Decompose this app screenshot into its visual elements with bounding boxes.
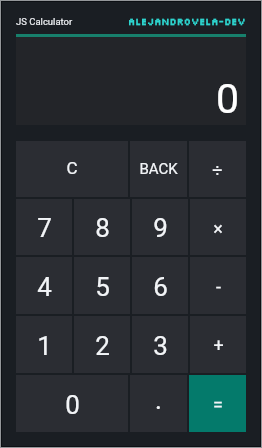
button[interactable]: 7	[16, 199, 72, 255]
staticText: C	[66, 158, 78, 178]
button[interactable]: 4	[16, 257, 72, 314]
staticText: =	[213, 394, 223, 415]
button[interactable]: Add	[190, 316, 246, 373]
staticText: -	[216, 276, 221, 297]
staticText: ÷	[212, 160, 223, 181]
button[interactable]: 1	[16, 316, 72, 373]
button[interactable]: 5	[74, 257, 130, 314]
button[interactable]: Multiply	[190, 199, 246, 255]
staticText: 0	[216, 75, 240, 123]
staticText: JS Calculator	[16, 16, 73, 27]
button[interactable]: 8	[74, 199, 130, 255]
button[interactable]: 2	[74, 316, 130, 373]
staticText: 4	[37, 272, 52, 302]
staticText: 6	[153, 272, 168, 302]
staticText: 3	[153, 331, 168, 361]
button[interactable]: BACK	[130, 141, 187, 197]
button[interactable]: Divide	[189, 141, 246, 197]
button[interactable]: 9	[132, 199, 188, 255]
button[interactable]: C	[16, 141, 128, 197]
button[interactable]: 0	[16, 375, 128, 432]
staticText: 1	[37, 331, 52, 361]
button[interactable]: Subtract	[190, 257, 246, 314]
button[interactable]: 3	[132, 316, 188, 373]
staticText: ×	[213, 218, 223, 239]
staticText: 0	[65, 390, 80, 420]
staticText: BACK	[139, 160, 178, 178]
staticText: 7	[37, 213, 52, 243]
staticText: +	[213, 335, 224, 356]
staticText: 9	[153, 213, 168, 243]
staticText: 8	[95, 213, 110, 243]
button[interactable]: Equals	[189, 375, 246, 432]
staticText: 5	[95, 272, 110, 302]
staticText: .	[155, 385, 162, 415]
staticText: 2	[95, 331, 110, 361]
staticText: ALEJANDROVELA-DEV	[128, 15, 246, 27]
button[interactable]: 6	[132, 257, 188, 314]
button[interactable]: .	[130, 375, 187, 432]
